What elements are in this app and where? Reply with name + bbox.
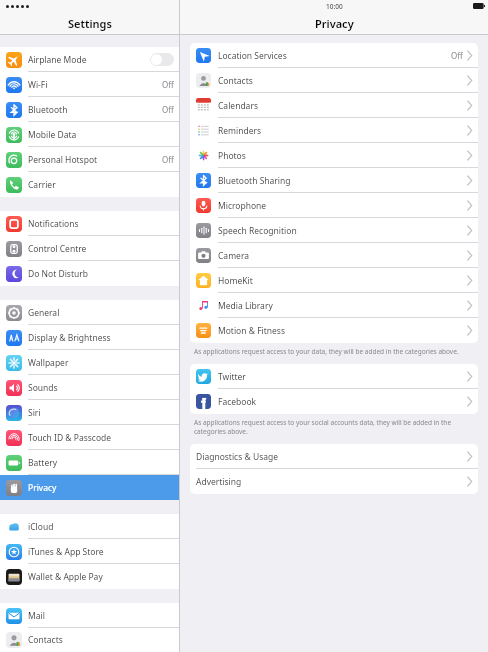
button[interactable]: Battery <box>0 450 180 475</box>
button[interactable]: Siri <box>0 400 180 425</box>
staticText: Bluetooth Sharing <box>218 175 291 187</box>
staticText: Advertising <box>196 476 242 488</box>
staticText: As applications request access to your s… <box>194 418 474 436</box>
button[interactable]: Privacy <box>0 475 180 500</box>
button[interactable]: Control Centre <box>0 236 180 261</box>
staticText: Sounds <box>28 382 58 394</box>
staticText: Calendars <box>218 100 258 112</box>
staticText: Location Services <box>218 50 287 62</box>
staticText: iCloud <box>28 521 54 533</box>
button[interactable]: Photos <box>190 143 478 168</box>
staticText: Media Library <box>218 300 273 312</box>
staticText: Twitter <box>218 371 246 383</box>
button[interactable]: Location Services <box>190 43 478 68</box>
button[interactable]: Speech Recognition <box>190 218 478 243</box>
staticText: Contacts <box>218 75 253 87</box>
button[interactable]: Facebook <box>190 389 478 414</box>
staticText: Photos <box>218 150 246 162</box>
button[interactable]: Do Not Disturb <box>0 261 180 286</box>
staticText: Contacts <box>28 634 63 646</box>
button[interactable]: Microphone <box>190 193 478 218</box>
button[interactable]: Personal Hotspot <box>0 147 180 172</box>
button[interactable]: Advertising <box>190 469 478 494</box>
button[interactable]: Wi-Fi <box>0 72 180 97</box>
staticText: Diagnostics & Usage <box>196 451 278 463</box>
staticText: Privacy <box>315 16 354 31</box>
button[interactable]: General <box>0 300 180 325</box>
staticText: Personal Hotspot <box>28 154 98 166</box>
button[interactable]: Bluetooth Sharing <box>190 168 478 193</box>
button[interactable]: Reminders <box>190 118 478 143</box>
button[interactable]: Notifications <box>0 211 180 236</box>
staticText: Carrier <box>28 179 56 191</box>
staticText: Speech Recognition <box>218 225 297 237</box>
button[interactable]: Airplane Mode toggle <box>150 53 174 66</box>
button[interactable]: Media Library <box>190 293 478 318</box>
button[interactable]: HomeKit <box>190 268 478 293</box>
staticText: Off <box>162 104 174 115</box>
staticText: HomeKit <box>218 275 253 287</box>
button[interactable]: Diagnostics & Usage <box>190 444 478 469</box>
staticText: 10:00 <box>326 2 343 11</box>
staticText: Notifications <box>28 218 79 230</box>
staticText: Camera <box>218 250 249 262</box>
staticText: Wallet & Apple Pay <box>28 571 103 583</box>
staticText: Microphone <box>218 200 267 212</box>
staticText: Facebook <box>218 396 257 408</box>
button[interactable]: Wallet & Apple Pay <box>0 564 180 589</box>
button[interactable]: Sounds <box>0 375 180 400</box>
staticText: Control Centre <box>28 243 87 255</box>
staticText: Siri <box>28 407 41 419</box>
button[interactable]: Carrier <box>0 172 180 197</box>
staticText: Motion & Fitness <box>218 325 286 337</box>
staticText: Off <box>451 50 463 61</box>
staticText: Reminders <box>218 125 262 137</box>
staticText: General <box>28 307 60 319</box>
button[interactable]: Contacts <box>190 68 478 93</box>
staticText: Off <box>162 79 174 90</box>
staticText: Privacy <box>28 482 57 494</box>
button[interactable]: Calendars <box>190 93 478 118</box>
button[interactable]: iTunes & App Store <box>0 539 180 564</box>
button[interactable]: Contacts <box>0 628 180 652</box>
button[interactable]: Touch ID & Passcode <box>0 425 180 450</box>
button[interactable]: Motion & Fitness <box>190 318 478 343</box>
staticText: Display & Brightness <box>28 332 111 344</box>
staticText: Settings <box>68 16 112 31</box>
button[interactable]: Camera <box>190 243 478 268</box>
button[interactable]: Mail <box>0 603 180 628</box>
staticText: As applications request access to your d… <box>194 347 459 356</box>
button[interactable]: Mobile Data <box>0 122 180 147</box>
staticText: Battery <box>28 457 58 469</box>
button[interactable]: iCloud <box>0 514 180 539</box>
button[interactable]: Twitter <box>190 364 478 389</box>
staticText: Do Not Disturb <box>28 268 88 280</box>
button[interactable]: Bluetooth <box>0 97 180 122</box>
staticText: Off <box>162 154 174 165</box>
staticText: iTunes & App Store <box>28 546 104 558</box>
staticText: Wallpaper <box>28 357 69 369</box>
button[interactable]: Display & Brightness <box>0 325 180 350</box>
staticText: Mobile Data <box>28 129 77 141</box>
staticText: Wi-Fi <box>28 79 48 91</box>
staticText: Touch ID & Passcode <box>28 432 112 444</box>
staticText: Bluetooth <box>28 104 68 116</box>
button[interactable]: Wallpaper <box>0 350 180 375</box>
staticText: Airplane Mode <box>28 54 87 66</box>
button[interactable]: Airplane Mode <box>0 47 180 72</box>
staticText: Mail <box>28 610 45 622</box>
